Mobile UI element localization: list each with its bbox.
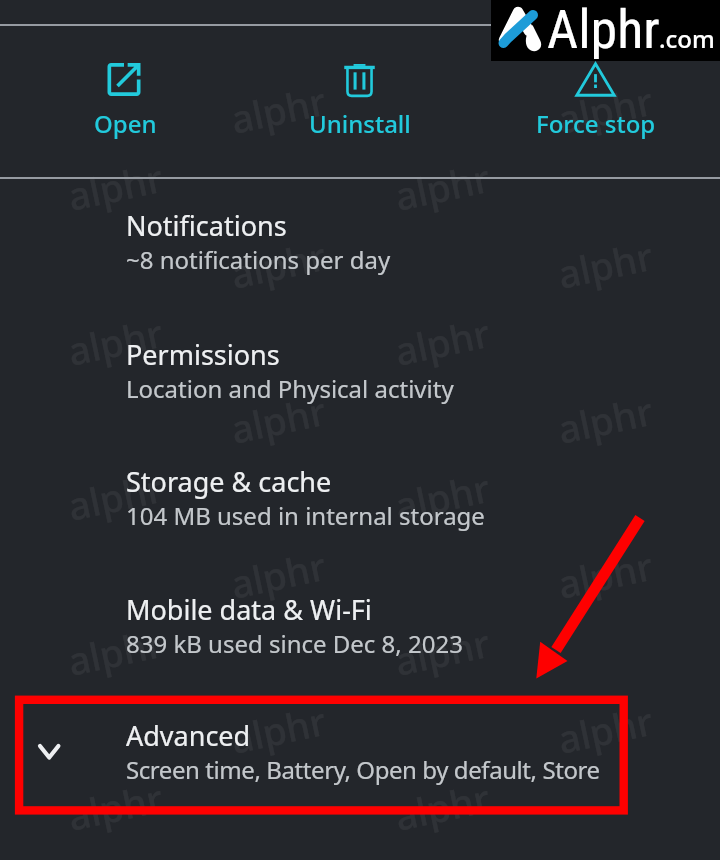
staticText: Location and Physical activity — [126, 372, 454, 405]
staticText: alphr — [553, 694, 658, 765]
button[interactable]: Mobile data & Wi-Fi — [0, 565, 720, 669]
button[interactable]: Notifications — [0, 181, 720, 285]
button[interactable]: Permissions — [0, 310, 720, 414]
button[interactable]: Storage & cache — [0, 437, 720, 541]
staticText: Mobile data & Wi-Fi — [126, 591, 372, 628]
staticText: 839 kB used since Dec 8, 2023 — [126, 627, 463, 660]
staticText: alphr — [63, 771, 168, 842]
staticText: alphr — [226, 74, 331, 145]
staticText: alphr — [553, 74, 658, 145]
staticText: ~8 notifications per day — [126, 243, 391, 276]
staticText: .com — [659, 22, 715, 55]
button[interactable]: Uninstall — [240, 26, 480, 176]
staticText: alphr — [63, 151, 168, 222]
staticText: Open — [94, 107, 157, 140]
staticText: alphr — [226, 384, 331, 455]
staticText: 104 MB used in internal storage — [126, 499, 485, 532]
staticText: Alphr — [547, 0, 660, 59]
staticText: alphr — [717, 151, 720, 222]
staticText: Screen time, Battery, Open by default, S… — [126, 753, 600, 786]
staticText: alphr — [553, 539, 658, 610]
staticText: Force stop — [536, 107, 656, 140]
staticText: alphr — [63, 616, 168, 687]
staticText: alphr — [553, 384, 658, 455]
staticText: Advanced — [126, 717, 251, 754]
staticText: Permissions — [126, 336, 280, 373]
staticText: Uninstall — [309, 107, 411, 140]
button[interactable]: Advanced — [0, 696, 720, 813]
staticText: alphr — [226, 539, 331, 610]
button[interactable]: Open — [0, 26, 240, 176]
staticText: alphr — [63, 461, 168, 532]
staticText: Notifications — [126, 207, 287, 244]
staticText: alphr — [390, 616, 495, 687]
staticText: alphr — [553, 229, 658, 300]
staticText: alphr — [226, 694, 331, 765]
staticText: alphr — [390, 151, 495, 222]
button[interactable]: Force stop — [480, 26, 720, 176]
staticText: alphr — [390, 771, 495, 842]
staticText: Storage & cache — [126, 463, 332, 500]
staticText: alphr — [63, 306, 168, 377]
staticText: alphr — [390, 461, 495, 532]
staticText: alphr — [226, 229, 331, 300]
staticText: alphr — [390, 306, 495, 377]
